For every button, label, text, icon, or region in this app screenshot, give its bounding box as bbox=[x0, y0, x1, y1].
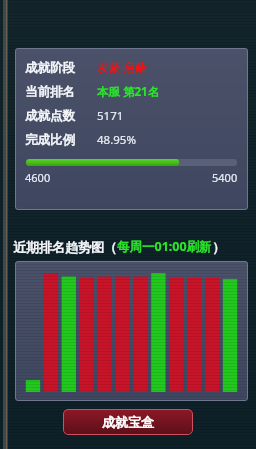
staticText: 近期排名趋势图 bbox=[13, 239, 104, 255]
staticText: 成就点数 bbox=[25, 108, 75, 124]
staticText: 48.95% bbox=[97, 132, 136, 148]
staticText: 每周一01:00刷新 bbox=[117, 238, 212, 255]
staticText: （ bbox=[104, 239, 117, 255]
staticText: 5171 bbox=[97, 108, 124, 124]
staticText: 当前排名 bbox=[25, 84, 75, 100]
staticText: 完成比例 bbox=[25, 132, 75, 148]
button[interactable]: 成就宝盒 bbox=[63, 409, 193, 435]
staticText: ） bbox=[212, 239, 225, 255]
staticText: 4600 bbox=[25, 170, 51, 185]
staticText: 5400 bbox=[212, 170, 238, 185]
staticText: 成就宝盒 bbox=[102, 414, 154, 430]
staticText: 发蒙·启蔽 bbox=[97, 60, 147, 76]
staticText: 本服 第21名 bbox=[97, 84, 160, 100]
staticText: 成就阶段 bbox=[25, 60, 75, 76]
